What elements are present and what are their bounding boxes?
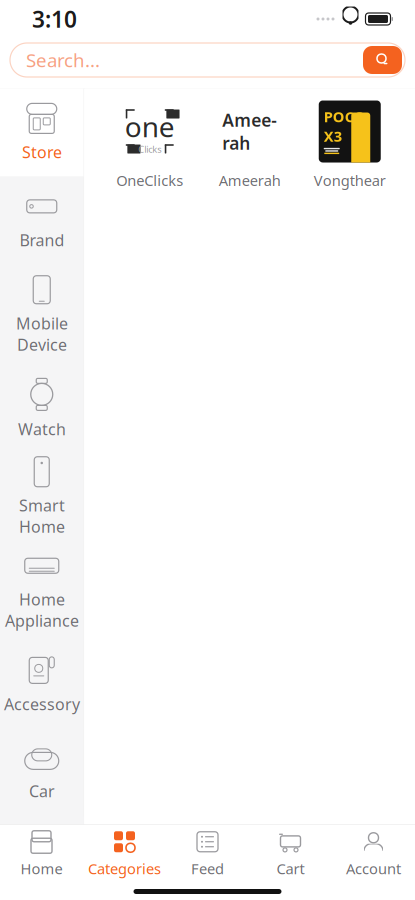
staticText: POCO X3 <box>324 107 366 146</box>
button[interactable]: Mobile Device <box>0 264 84 364</box>
button[interactable]: Ameerah <box>200 100 300 190</box>
button[interactable]: POCO X3 <box>300 100 400 190</box>
button[interactable]: Feed <box>166 829 249 879</box>
button[interactable]: Smart Home <box>0 452 84 540</box>
button[interactable]: Store <box>0 88 84 176</box>
button[interactable]: Account <box>332 829 415 879</box>
staticText: Car <box>29 780 55 802</box>
staticText: Home <box>20 859 62 878</box>
staticText: OneClicks <box>116 170 183 190</box>
staticText: Smart Home <box>19 495 65 537</box>
staticText: Categories <box>88 859 161 878</box>
staticText: Ameerah <box>222 108 277 154</box>
staticText: Home Appliance <box>5 589 79 631</box>
button[interactable]: Home <box>0 829 83 879</box>
button[interactable]: one <box>100 100 200 190</box>
button[interactable]: Watch <box>0 364 84 452</box>
staticText: Watch <box>18 418 66 440</box>
staticText: Account <box>346 859 401 878</box>
button[interactable]: Brand <box>0 176 84 264</box>
button[interactable]: Home Appliance <box>0 540 84 640</box>
staticText: Ameerah <box>219 170 281 190</box>
staticText: 3:10 <box>32 4 77 34</box>
button[interactable]: Accessory <box>0 640 84 728</box>
staticText: Accessory <box>4 693 80 715</box>
staticText: Clicks <box>138 143 161 155</box>
staticText: Cart <box>276 859 304 878</box>
button[interactable]: Car <box>0 728 84 816</box>
staticText: Store <box>22 141 62 163</box>
button[interactable]: Categories <box>83 829 166 879</box>
button[interactable]: Cart <box>249 829 332 879</box>
button[interactable]: Search <box>363 46 402 74</box>
staticText: Vongthear <box>314 170 386 190</box>
staticText: Mobile Device <box>16 313 68 355</box>
staticText: Brand <box>19 229 64 251</box>
staticText: Feed <box>191 859 224 878</box>
staticText: one <box>125 108 175 145</box>
staticText: Search... <box>26 48 100 72</box>
